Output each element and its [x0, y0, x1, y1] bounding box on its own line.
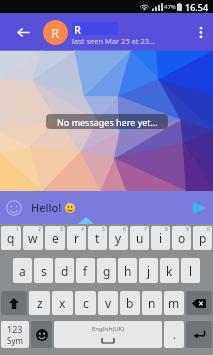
staticText: Sym [7, 335, 23, 346]
staticText: s [41, 263, 47, 279]
button[interactable]: . [164, 321, 184, 348]
button[interactable]: Back [0, 13, 42, 51]
staticText: 2 [38, 226, 41, 233]
button[interactable]: o [172, 226, 191, 250]
staticText: x [59, 295, 66, 311]
staticText: i [159, 230, 163, 246]
button[interactable]: k [160, 258, 179, 283]
button[interactable]: e [45, 226, 65, 250]
button[interactable]: q [1, 226, 21, 250]
staticText: 5 [102, 226, 105, 233]
staticText: 0 [207, 226, 210, 233]
button[interactable]: x [52, 291, 73, 315]
button[interactable]: More options [189, 13, 213, 51]
button[interactable]: p [193, 226, 212, 250]
button[interactable]: m [164, 291, 184, 315]
staticText: . [173, 327, 176, 342]
staticText: m [168, 295, 180, 311]
button[interactable]: Enter [186, 321, 212, 348]
staticText: f [83, 263, 88, 279]
button[interactable]: Backspace [186, 291, 212, 315]
staticText: y [115, 230, 122, 246]
button[interactable]: s [34, 258, 53, 283]
staticText: 7 [144, 226, 147, 233]
staticText: 1 [16, 226, 19, 233]
staticText: 9 [186, 226, 189, 233]
button[interactable]: f [76, 258, 95, 283]
button[interactable]: a [13, 258, 32, 283]
staticText: q [7, 230, 15, 246]
button[interactable]: R [43, 13, 213, 51]
staticText: k [166, 263, 173, 279]
button[interactable]: w [23, 226, 43, 250]
staticText: 4 [81, 226, 84, 233]
staticText: 3 [60, 226, 63, 233]
button[interactable]: n [142, 291, 162, 315]
staticText: English(UK) [92, 325, 125, 333]
staticText: c [83, 295, 89, 311]
button[interactable]: Emoji [0, 191, 28, 224]
staticText: 47% [164, 3, 176, 11]
button[interactable]: g [97, 258, 116, 283]
staticText: p [199, 230, 207, 246]
staticText: t [95, 230, 100, 246]
staticText: z [37, 295, 43, 311]
button[interactable]: Shift [1, 291, 27, 315]
button[interactable]: u [130, 226, 149, 250]
button[interactable]: 123 [1, 321, 29, 348]
staticText: v [105, 295, 112, 311]
staticText: a [19, 263, 26, 279]
button[interactable]: z [29, 291, 50, 315]
button[interactable]: t [88, 226, 107, 250]
staticText: r [74, 230, 79, 246]
staticText: u [136, 230, 144, 246]
button[interactable]: b [120, 291, 140, 315]
staticText: b [126, 295, 134, 311]
button[interactable]: Send [185, 191, 213, 224]
button[interactable]: c [75, 291, 96, 315]
staticText: d [61, 263, 69, 279]
staticText: j [147, 263, 151, 279]
button[interactable]: d [55, 258, 74, 283]
staticText: last seen Mar 25 at 23… [72, 36, 155, 46]
staticText: Hello! [31, 200, 65, 215]
button[interactable]: English(UK) [54, 321, 162, 348]
button[interactable]: Emoji keyboard [31, 321, 52, 348]
staticText: w [28, 230, 38, 246]
staticText: o [178, 230, 186, 246]
staticText: e [52, 230, 59, 246]
staticText: h [124, 263, 132, 279]
button[interactable]: v [98, 291, 118, 315]
staticText: R [51, 24, 60, 42]
button[interactable]: j [139, 258, 158, 283]
button[interactable]: y [109, 226, 128, 250]
button[interactable]: l [181, 258, 200, 283]
staticText: l [189, 263, 193, 279]
button[interactable]: No messages here yet… [46, 114, 168, 129]
button[interactable]: r [67, 226, 86, 250]
button[interactable]: h [118, 258, 137, 283]
staticText: R [74, 22, 81, 35]
button[interactable]: i [151, 226, 170, 250]
staticText: 16.54 [185, 1, 209, 13]
staticText: g [103, 263, 111, 279]
staticText: 8 [165, 226, 168, 233]
staticText: 6 [123, 226, 126, 233]
staticText: 123 [7, 323, 23, 335]
staticText: No messages here yet… [57, 116, 158, 128]
staticText: n [148, 295, 156, 311]
